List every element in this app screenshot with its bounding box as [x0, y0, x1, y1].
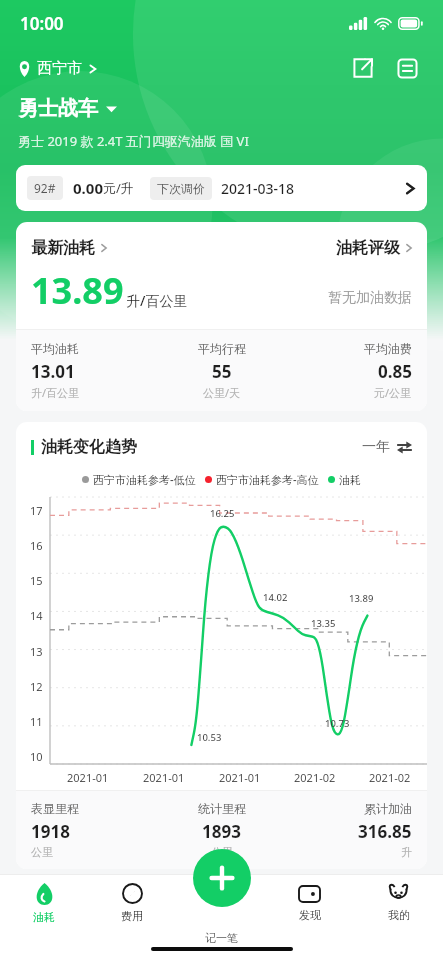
staticText: 表显里程 — [31, 801, 79, 816]
staticText: 公里 — [211, 845, 233, 859]
staticText: 2021-01 — [67, 770, 109, 785]
staticText: 最新油耗 — [31, 238, 95, 258]
staticText: 1918 — [31, 820, 70, 843]
staticText: 平均行程 — [198, 341, 246, 356]
staticText: 2021-01 — [219, 770, 261, 785]
button[interactable]: 勇士战车 — [18, 96, 117, 121]
staticText: 12 — [30, 679, 43, 694]
staticText: 公里 — [31, 845, 53, 859]
staticText: 勇士 2019 款 2.4T 五门四驱汽油版 国 VI — [18, 132, 249, 150]
staticText: 西宁市油耗参考-低位 — [93, 472, 196, 487]
staticText: 油耗评级 — [336, 238, 400, 258]
staticText: 西宁市 — [37, 59, 82, 78]
button[interactable]: Share — [345, 50, 381, 86]
staticText: 13.35 — [311, 617, 336, 630]
button[interactable]: Records — [389, 50, 425, 86]
staticText: 1893 — [202, 820, 241, 843]
staticText: 15 — [30, 573, 43, 588]
button[interactable]: 最新油耗 — [31, 238, 107, 258]
staticText: 费用 — [121, 909, 143, 923]
staticText: 16.25 — [210, 507, 235, 520]
staticText: 14.02 — [263, 591, 288, 604]
staticText: 14 — [30, 608, 43, 623]
staticText: 油耗 — [33, 910, 55, 924]
staticText: 0.00 — [73, 178, 103, 198]
staticText: 发现 — [299, 908, 321, 922]
staticText: 平均油耗 — [31, 341, 79, 356]
staticText: 累计加油 — [364, 801, 412, 816]
button[interactable]: 油耗 — [0, 875, 88, 931]
staticText: 升/百公里 — [126, 291, 188, 310]
staticText: 13.89 — [31, 266, 124, 315]
staticText: 平均油费 — [364, 341, 412, 356]
staticText: 2021-02 — [369, 770, 411, 785]
staticText: 10.53 — [197, 731, 222, 744]
button[interactable]: 一年 — [362, 438, 412, 456]
staticText: 元/升 — [103, 179, 134, 197]
button[interactable]: 发现 — [265, 875, 354, 931]
staticText: 17 — [30, 503, 43, 518]
staticText: 2021-01 — [143, 770, 185, 785]
staticText: 2021-02 — [294, 770, 336, 785]
staticText: 暂无加油数据 — [328, 289, 412, 307]
staticText: 升 — [401, 845, 412, 859]
button[interactable]: 92# — [16, 165, 427, 211]
staticText: 西宁市油耗参考-高位 — [216, 472, 319, 487]
button[interactable]: 费用 — [88, 875, 176, 931]
staticText: 13 — [30, 644, 43, 659]
staticText: 油耗变化趋势 — [41, 437, 137, 457]
staticText: 公里/天 — [203, 385, 241, 400]
staticText: 10:00 — [20, 12, 64, 35]
button[interactable]: Add record — [193, 849, 251, 907]
staticText: 一年 — [362, 438, 390, 456]
staticText: 勇士战车 — [18, 96, 98, 121]
staticText: 记一笔 — [205, 931, 238, 945]
staticText: 13.01 — [31, 360, 75, 383]
staticText: 统计里程 — [198, 801, 246, 816]
staticText: 我的 — [388, 908, 410, 922]
staticText: 10.73 — [325, 717, 350, 730]
staticText: 11 — [30, 714, 43, 729]
staticText: 0.85 — [378, 360, 412, 383]
staticText: 元/公里 — [374, 385, 412, 400]
staticText: 升/百公里 — [31, 385, 80, 400]
staticText: 油耗 — [339, 473, 361, 487]
staticText: 13.89 — [349, 592, 374, 605]
button[interactable]: 油耗评级 — [336, 238, 412, 258]
staticText: 2021-03-18 — [221, 179, 295, 198]
staticText: 316.85 — [358, 820, 412, 843]
staticText: 10 — [30, 749, 43, 764]
staticText: 92# — [34, 180, 56, 196]
button[interactable]: 西宁市 — [18, 55, 97, 82]
button[interactable]: 我的 — [354, 875, 443, 931]
staticText: 55 — [212, 360, 232, 383]
staticText: 16 — [30, 538, 43, 553]
staticText: 下次调价 — [157, 181, 205, 196]
